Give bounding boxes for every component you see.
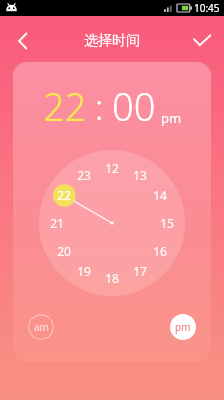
staticText: 23 [77,167,91,183]
staticText: : [95,84,104,130]
staticText: 22 [43,80,87,132]
staticText: 选择时间 [84,32,140,50]
button[interactable]: 14 [39,150,185,296]
staticText: pm [161,109,182,127]
button[interactable]: 16 [39,150,185,296]
staticText: 19 [77,263,91,279]
button[interactable]: 18 [39,150,185,296]
button[interactable]: 23 [39,150,185,296]
button[interactable]: Back [6,24,40,58]
button[interactable]: 15 [39,150,185,296]
staticText: 10:45 [194,1,220,15]
staticText: 22 [57,187,71,203]
button[interactable]: 12 [39,150,185,296]
staticText: am [34,320,49,334]
staticText: 15 [160,215,174,231]
button[interactable]: 19 [39,150,185,296]
button[interactable]: Confirm [185,24,219,58]
staticText: 14 [153,187,167,203]
staticText: 21 [50,215,64,231]
button[interactable]: 20 [39,150,185,296]
staticText: 17 [133,263,147,279]
staticText: pm [175,320,191,334]
staticText: 16 [153,243,167,259]
button[interactable]: 22 [43,80,87,132]
button[interactable]: pm [170,314,196,340]
button[interactable]: 13 [39,150,185,296]
button[interactable]: am [28,314,54,340]
button[interactable]: 00 [112,80,156,132]
button[interactable]: 21 [39,150,185,296]
staticText: 18 [105,270,119,286]
staticText: 20 [57,243,71,259]
button[interactable]: 22 [39,150,185,296]
staticText: 12 [105,160,119,176]
staticText: 13 [133,167,147,183]
staticText: 00 [112,80,156,132]
button[interactable]: 17 [39,150,185,296]
